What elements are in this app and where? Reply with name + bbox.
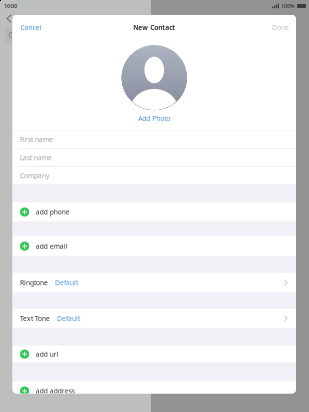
staticText: Ringtone bbox=[20, 278, 48, 287]
staticText: add email bbox=[36, 242, 68, 251]
staticText: Default bbox=[57, 314, 80, 323]
button[interactable]: Ringtone bbox=[12, 273, 296, 293]
button[interactable]: Cancel bbox=[12, 19, 45, 36]
staticText: Last name bbox=[20, 153, 52, 162]
staticText: add phone bbox=[36, 208, 70, 216]
button[interactable]: add address bbox=[12, 381, 296, 401]
button[interactable]: add url bbox=[12, 346, 296, 363]
staticText: Add Photo bbox=[138, 114, 170, 123]
staticText: Company bbox=[20, 171, 49, 180]
button[interactable]: Last name bbox=[12, 149, 296, 166]
button[interactable]: Company bbox=[12, 167, 296, 184]
staticText: New Contact bbox=[133, 23, 175, 32]
button[interactable]: First name bbox=[12, 131, 296, 148]
button[interactable]: add phone bbox=[12, 202, 296, 222]
staticText: 100% bbox=[281, 2, 295, 10]
staticText: Text Tone bbox=[20, 314, 50, 323]
button[interactable]: Text Tone bbox=[12, 309, 296, 328]
staticText: Default bbox=[55, 278, 78, 287]
button[interactable]: Done bbox=[268, 19, 296, 36]
staticText: 10:00 bbox=[4, 2, 17, 10]
button[interactable]: add email bbox=[12, 236, 296, 256]
staticText: add address bbox=[36, 387, 75, 395]
staticText: Done bbox=[272, 23, 289, 32]
staticText: add url bbox=[36, 350, 59, 359]
button[interactable]: Add Photo bbox=[134, 110, 174, 125]
staticText: Cancel bbox=[20, 23, 41, 32]
staticText: First name bbox=[20, 135, 53, 144]
